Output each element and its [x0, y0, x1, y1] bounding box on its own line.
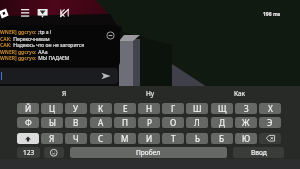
staticText: Ну [146, 89, 155, 98]
staticText: Э [267, 117, 273, 128]
button[interactable]: Chat [37, 8, 48, 18]
button[interactable]: Mute chat [60, 9, 69, 17]
staticText: CAK: [0, 42, 12, 49]
staticText: А [98, 117, 104, 128]
staticText: WNER] ggcryo: [0, 49, 37, 56]
button[interactable]: 123 [17, 147, 40, 158]
button[interactable]: О [162, 117, 184, 128]
button[interactable]: Х [259, 103, 281, 114]
button[interactable]: З [235, 103, 257, 114]
staticText: К [98, 103, 104, 114]
staticText: CAK: [0, 36, 12, 43]
staticText: Пробел [136, 148, 161, 157]
staticText: Л [194, 117, 200, 128]
staticText: Ь [195, 133, 200, 144]
button[interactable]: П [114, 117, 136, 128]
button[interactable]: Menu [20, 8, 30, 17]
staticText: Х [268, 103, 273, 114]
button[interactable]: Е [114, 103, 136, 114]
staticText: AAa [37, 49, 48, 56]
button[interactable]: Send message [101, 72, 111, 80]
button[interactable]: Backspace [259, 133, 281, 144]
button[interactable]: Ввод [233, 147, 284, 158]
button[interactable]: Пробел [70, 147, 227, 158]
button[interactable]: Ш [186, 103, 208, 114]
staticText: Б [219, 133, 225, 144]
staticText: ;tp a l [37, 29, 52, 36]
staticText: С [98, 133, 104, 144]
staticText: Ы [49, 117, 56, 128]
staticText: У [73, 103, 79, 114]
staticText: О [170, 117, 177, 128]
staticText: З [244, 103, 249, 114]
button[interactable]: Send message [0, 68, 118, 84]
staticText: Ц [49, 103, 56, 114]
button[interactable]: А [90, 117, 112, 128]
button[interactable]: У [65, 103, 87, 114]
staticText: П [122, 117, 129, 128]
staticText: Й [25, 103, 32, 114]
button[interactable]: Д [211, 117, 233, 128]
button[interactable]: Ц [41, 103, 63, 114]
button[interactable]: Й [17, 103, 39, 114]
button[interactable]: Minimize chat [106, 31, 115, 40]
staticText: WNER] ggcryo: [0, 29, 37, 36]
button[interactable]: Ф [17, 117, 39, 128]
staticText: Я [49, 133, 55, 144]
button[interactable]: С [90, 133, 112, 144]
staticText: Ж [242, 117, 250, 128]
button[interactable]: Ж [235, 117, 257, 128]
button[interactable]: Ы [41, 117, 63, 128]
button[interactable]: К [90, 103, 112, 114]
button[interactable]: Т [162, 133, 184, 144]
staticText: Перекочнивам [12, 36, 50, 43]
button[interactable]: Я [44, 86, 84, 101]
button[interactable]: Б [211, 133, 233, 144]
button[interactable]: В [65, 117, 87, 128]
button[interactable]: Ь [186, 133, 208, 144]
staticText: Щ [218, 103, 227, 114]
staticText: Д [219, 117, 225, 128]
button[interactable]: И [138, 133, 160, 144]
button[interactable]: Я [41, 133, 63, 144]
staticText: Как [234, 89, 246, 98]
button[interactable]: Л [186, 117, 208, 128]
staticText: Ю [242, 133, 251, 144]
button[interactable]: Emoji [44, 147, 64, 158]
button[interactable]: Roblox menu [0, 8, 9, 20]
button[interactable]: Э [259, 117, 281, 128]
button[interactable]: Г [162, 103, 184, 114]
staticText: МЫ ПАДАЕМ [37, 55, 70, 62]
button[interactable]: М [114, 133, 136, 144]
button[interactable]: Н [138, 103, 160, 114]
staticText: Ч [73, 133, 79, 144]
staticText: И [146, 133, 153, 144]
button[interactable]: Ю [235, 133, 257, 144]
staticText: Т [171, 133, 176, 144]
button[interactable]: Р [138, 117, 160, 128]
staticText: Е [123, 103, 128, 114]
staticText: Я [62, 89, 67, 98]
button[interactable]: Shift [17, 133, 39, 144]
staticText: Н [146, 103, 153, 114]
staticText: Р [147, 117, 152, 128]
button[interactable]: Щ [211, 103, 233, 114]
staticText: WNER] ggcryo: [0, 55, 37, 62]
staticText: 196 ms [263, 11, 281, 18]
button[interactable]: Ну [130, 86, 170, 101]
staticText: 123 [23, 148, 35, 157]
button[interactable]: Ч [65, 133, 87, 144]
staticText: Г [171, 103, 176, 114]
staticText: Надеюсь что он не загорится [12, 42, 85, 49]
staticText: М [121, 133, 129, 144]
staticText: Ф [25, 117, 32, 128]
staticText: Ввод [251, 148, 267, 157]
staticText: В [73, 117, 79, 128]
button[interactable]: Как [220, 86, 260, 101]
staticText: Ш [193, 103, 202, 114]
